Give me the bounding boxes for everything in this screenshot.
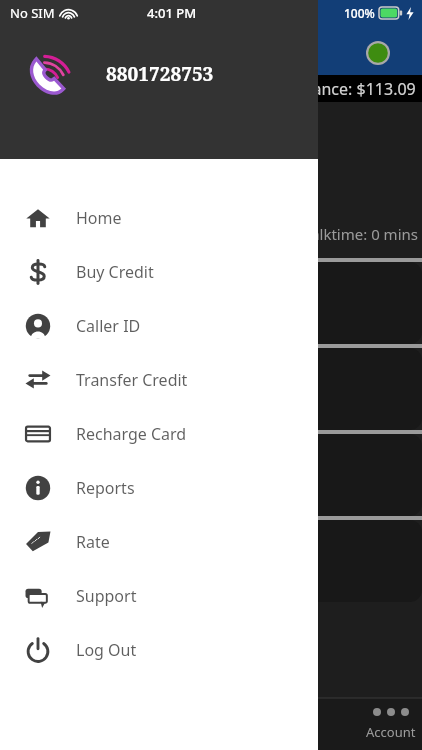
staticText: Support xyxy=(76,585,137,607)
staticText: Home xyxy=(76,207,122,229)
staticText: 8801728753 xyxy=(106,61,214,87)
button[interactable]: Key 9 xyxy=(6,434,422,516)
staticText: Buy Credit xyxy=(76,261,154,283)
staticText: Talktime: 0 mins xyxy=(304,224,418,244)
button[interactable]: Key 3 xyxy=(6,262,422,344)
button[interactable]: Home xyxy=(0,191,318,245)
staticText: Reports xyxy=(76,477,135,499)
button[interactable]: Log Out xyxy=(0,623,318,677)
button[interactable]: Recharge Card xyxy=(0,407,318,461)
staticText: No SIM xyxy=(10,4,55,22)
staticText: Recharge Card xyxy=(76,423,187,445)
button[interactable]: Reports xyxy=(0,461,318,515)
button[interactable]: Rate xyxy=(0,515,318,569)
button[interactable]: Transfer Credit xyxy=(0,353,318,407)
staticText: Balance: $113.09 xyxy=(289,78,416,100)
button[interactable]: Support xyxy=(0,569,318,623)
button[interactable]: Account xyxy=(366,708,416,741)
button[interactable]: Key 6 xyxy=(6,348,422,430)
staticText: Transfer Credit xyxy=(76,369,188,391)
button[interactable]: Caller ID xyxy=(0,299,318,353)
staticText: Log Out xyxy=(76,639,137,661)
button[interactable]: Connection status xyxy=(366,41,390,65)
staticText: 4:01 PM xyxy=(147,4,197,22)
staticText: 100% xyxy=(344,5,375,21)
staticText: Account xyxy=(366,723,416,741)
button[interactable]: Buy Credit xyxy=(0,245,318,299)
button[interactable]: Key # xyxy=(6,520,422,602)
staticText: Caller ID xyxy=(76,315,141,337)
staticText: Rate xyxy=(76,531,110,553)
